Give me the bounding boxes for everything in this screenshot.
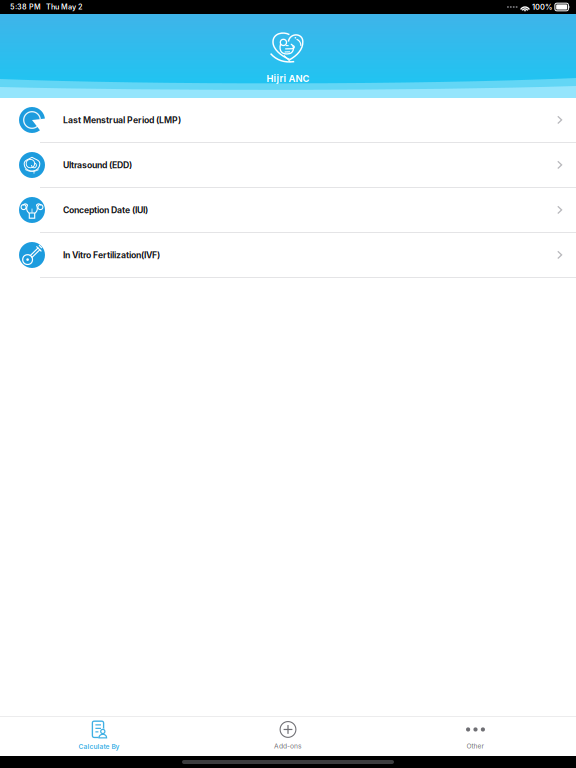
button[interactable]: Calculate By <box>3 717 194 756</box>
staticText: Add-ons <box>274 742 302 750</box>
staticText: Thu May 2 <box>46 3 82 11</box>
button[interactable]: Add-ons <box>194 717 381 756</box>
button[interactable]: In Vitro Fertilization(IVF) <box>0 233 576 278</box>
staticText: Other <box>466 742 484 750</box>
staticText: 100% <box>532 2 552 11</box>
staticText: Conception Date (IUI) <box>63 205 148 215</box>
staticText: Calculate By <box>78 742 119 751</box>
button[interactable]: Other <box>381 717 569 756</box>
staticText: Ultrasound (EDD) <box>63 160 132 170</box>
staticText: In Vitro Fertilization(IVF) <box>63 250 160 260</box>
staticText: Hijri ANC <box>266 73 309 84</box>
button[interactable]: Conception Date (IUI) <box>0 188 576 233</box>
staticText: 5:38 PM <box>10 3 41 11</box>
staticText: Last Menstrual Period (LMP) <box>63 115 181 125</box>
button[interactable]: Last Menstrual Period (LMP) <box>0 98 576 143</box>
button[interactable]: Ultrasound (EDD) <box>0 143 576 188</box>
